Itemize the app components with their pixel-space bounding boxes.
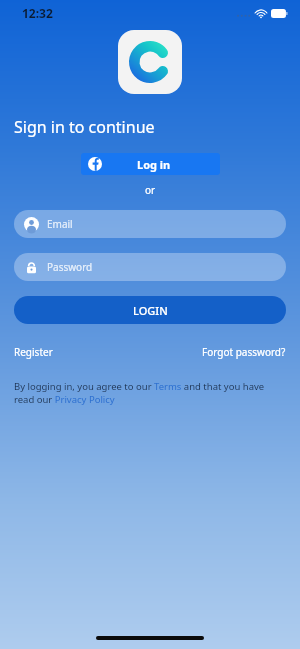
staticText: Email [47, 217, 73, 231]
staticText: Sign in to continue [14, 116, 155, 138]
staticText: 12:32 [22, 5, 53, 21]
staticText: or [145, 183, 156, 197]
staticText: Log in [137, 157, 171, 172]
staticText: LOGIN [133, 303, 168, 318]
button[interactable]: Register [14, 345, 53, 359]
button[interactable]: LOGIN [14, 296, 286, 324]
button[interactable]: Email [14, 210, 286, 238]
button[interactable]: Facebook [81, 153, 220, 175]
button[interactable]: Password [14, 253, 286, 281]
button[interactable]: By logging in, you agree to our Terms an… [14, 380, 286, 406]
button[interactable]: Forgot password? [202, 345, 286, 359]
other: Facebook [88, 157, 102, 171]
staticText: Password [47, 260, 93, 274]
